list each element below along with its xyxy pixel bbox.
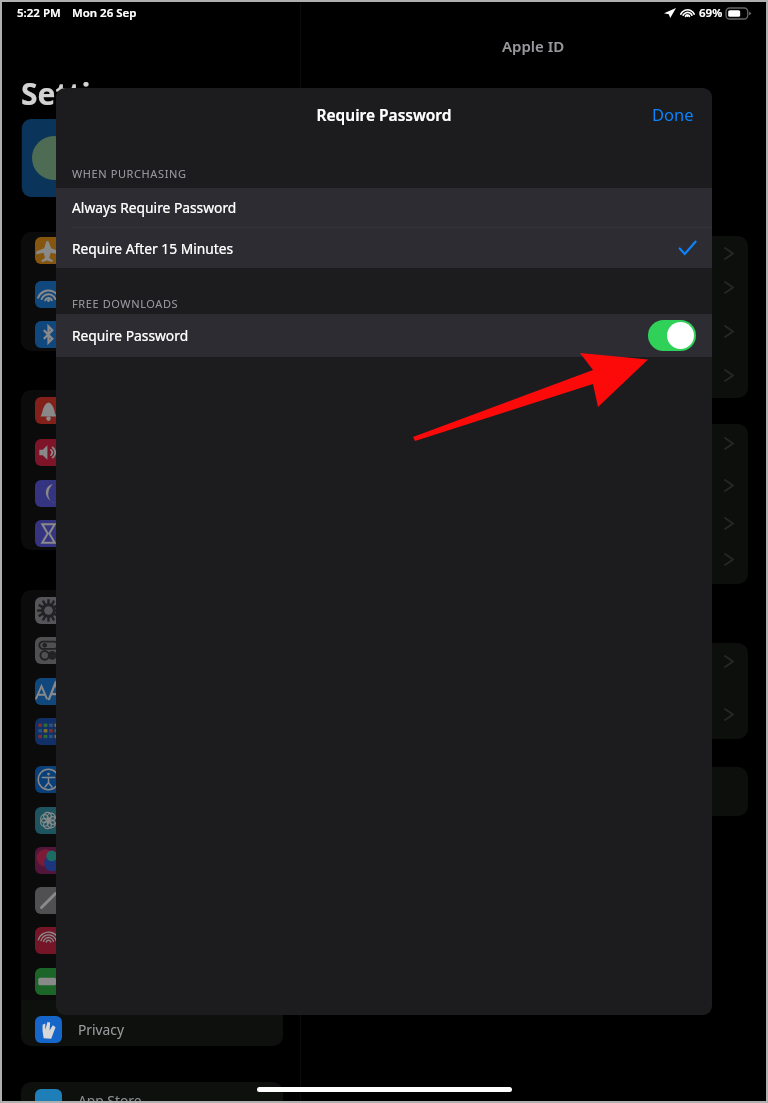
button[interactable]: Always Require Password <box>56 188 712 227</box>
button[interactable]: Focus <box>35 480 62 507</box>
button[interactable]: Settings item <box>620 357 748 393</box>
staticText: Mon 26 Sep <box>72 5 137 21</box>
button[interactable]: Home Screen & Dock <box>35 718 62 745</box>
staticText: Always Require Password <box>72 198 237 217</box>
button[interactable]: Display & Brightness <box>35 678 62 705</box>
button[interactable]: Done <box>634 94 712 134</box>
button[interactable]: Sounds <box>35 439 62 466</box>
button[interactable]: General <box>35 597 62 624</box>
button[interactable]: Airplane Mode <box>35 237 62 264</box>
button[interactable]: Require Password toggle <box>648 320 696 351</box>
button[interactable]: Touch ID & Passcode <box>35 927 62 954</box>
button[interactable]: Siri & Search <box>35 847 62 874</box>
staticText: 69% <box>699 5 723 21</box>
button[interactable]: Wi-Fi <box>35 281 62 308</box>
staticText: Privacy <box>78 1020 125 1039</box>
staticText: Require After 15 Minutes <box>72 239 234 258</box>
button[interactable]: Require Password <box>56 314 712 357</box>
button[interactable]: Settings item <box>620 696 748 732</box>
staticText: Require Password <box>56 104 712 125</box>
button[interactable]: Privacy <box>21 1000 283 1046</box>
staticText: Apple ID <box>502 36 565 56</box>
button[interactable]: Settings item <box>620 313 748 349</box>
button[interactable]: Settings item <box>620 235 748 271</box>
button[interactable]: Apple Pencil <box>35 887 62 914</box>
staticText: Settings <box>21 73 144 114</box>
staticText: WHEN PURCHASING <box>72 166 187 181</box>
button[interactable]: Notifications <box>35 397 62 424</box>
button[interactable]: Accessibility <box>35 766 62 793</box>
button[interactable]: Settings item <box>620 505 748 541</box>
staticText: Require Password <box>72 326 189 345</box>
button[interactable]: Battery <box>35 968 62 995</box>
button[interactable]: Bluetooth <box>35 321 62 348</box>
button[interactable]: Settings item <box>620 643 748 679</box>
staticText: App Store <box>78 1091 142 1103</box>
button[interactable]: Settings item <box>620 467 748 503</box>
button[interactable]: Settings item <box>620 269 748 305</box>
button[interactable]: Settings item <box>620 541 748 577</box>
staticText: Done <box>652 103 694 125</box>
button[interactable]: Settings item <box>620 425 748 461</box>
staticText: FREE DOWNLOADS <box>72 296 179 311</box>
button[interactable]: Control Center <box>35 637 62 664</box>
button[interactable]: Require After 15 Minutes <box>56 228 712 268</box>
button[interactable]: Wallpaper <box>35 807 62 834</box>
button[interactable]: Screen Time <box>35 520 62 547</box>
staticText: 5:22 PM <box>17 5 61 21</box>
button[interactable]: App Store <box>21 1082 283 1103</box>
